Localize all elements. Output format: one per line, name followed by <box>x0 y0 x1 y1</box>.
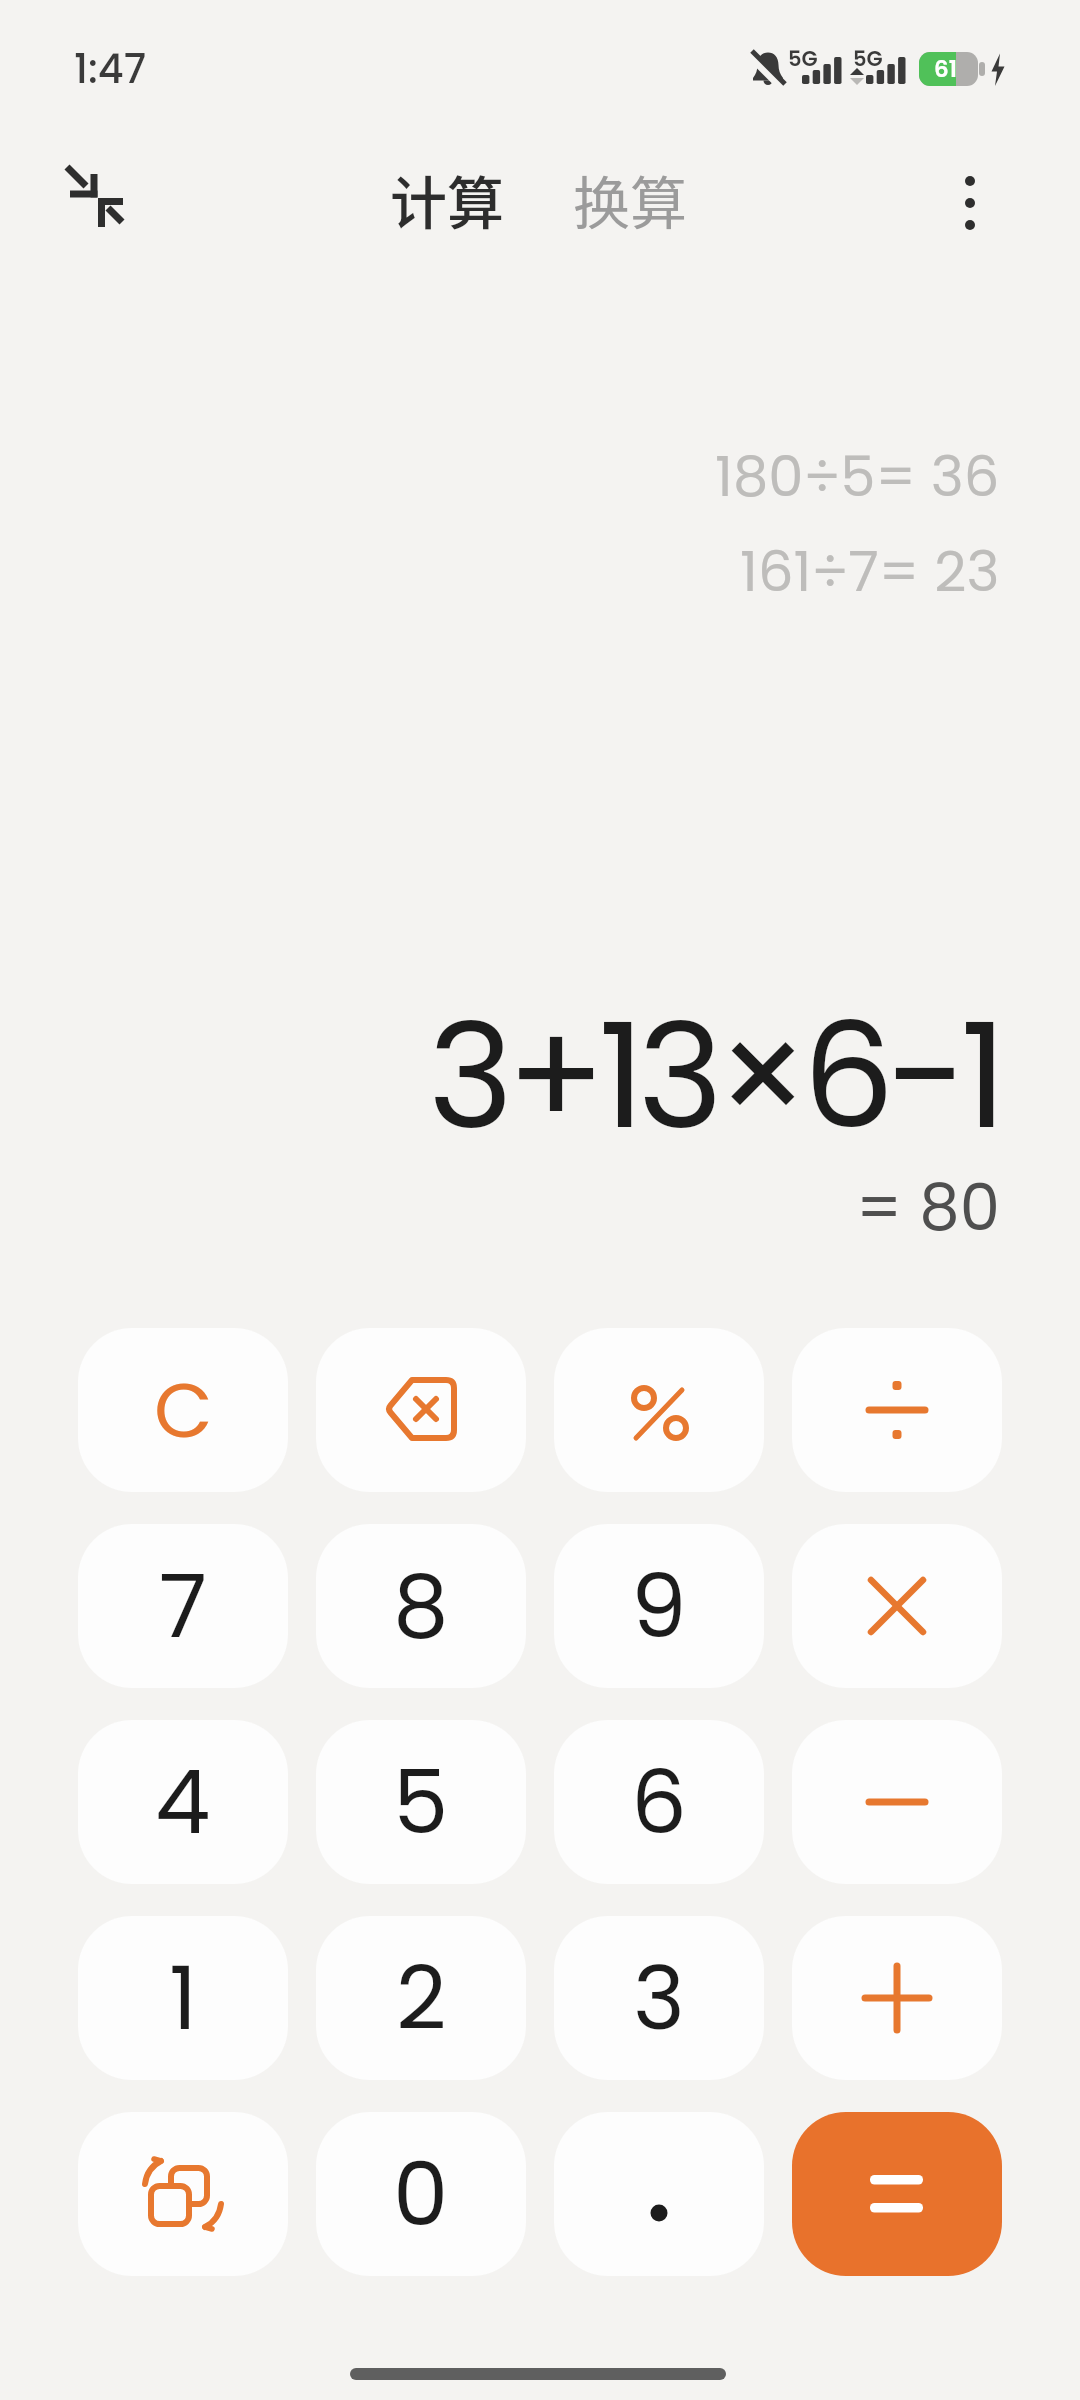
staticText: 计算 <box>390 158 504 241</box>
button[interactable] <box>554 2112 764 2276</box>
button[interactable]: 6 <box>554 1720 764 1884</box>
button[interactable]: 0 <box>316 2112 526 2276</box>
staticText: = 80 <box>856 1163 1000 1253</box>
button[interactable] <box>792 1916 1002 2080</box>
staticText: 4 <box>155 1741 211 1864</box>
staticText: 换算 <box>573 158 687 241</box>
button[interactable]: 8 <box>316 1524 526 1688</box>
staticText: 180÷5= 36 <box>715 437 1000 515</box>
staticText: 5G <box>788 44 818 73</box>
button[interactable]: 计算 <box>377 156 517 242</box>
staticText: 0 <box>393 2133 449 2256</box>
staticText: C <box>154 1357 213 1463</box>
button[interactable]: 5 <box>316 1720 526 1884</box>
staticText: 6 <box>631 1741 687 1864</box>
staticText: 2 <box>396 1937 447 2060</box>
button[interactable]: C <box>78 1328 288 1492</box>
staticText: 1 <box>169 1937 198 2060</box>
staticText: 5 <box>393 1741 449 1864</box>
button[interactable] <box>792 2112 1002 2276</box>
staticText: 1:47 <box>74 41 147 97</box>
button[interactable]: 2 <box>316 1916 526 2080</box>
button[interactable] <box>48 152 140 244</box>
button[interactable]: 7 <box>78 1524 288 1688</box>
button[interactable] <box>792 1720 1002 1884</box>
staticText: 9 <box>631 1545 687 1668</box>
button[interactable] <box>78 2112 288 2276</box>
staticText: 7 <box>159 1545 208 1668</box>
staticText: 161÷7= 23 <box>740 532 1000 610</box>
button[interactable]: 1 <box>78 1916 288 2080</box>
button[interactable] <box>792 1328 1002 1492</box>
staticText: 8 <box>393 1545 449 1668</box>
button[interactable] <box>554 1328 764 1492</box>
button[interactable]: 4 <box>78 1720 288 1884</box>
staticText: 3+13×6-1 <box>428 975 1000 1178</box>
button[interactable] <box>316 1328 526 1492</box>
staticText: 3 <box>633 1937 685 2060</box>
button[interactable]: 3 <box>554 1916 764 2080</box>
button[interactable] <box>792 1524 1002 1688</box>
button[interactable] <box>930 160 1010 246</box>
button[interactable]: 换算 <box>560 156 700 242</box>
staticText: 61 <box>934 53 958 85</box>
button[interactable]: 9 <box>554 1524 764 1688</box>
staticText: 5G <box>853 44 883 73</box>
